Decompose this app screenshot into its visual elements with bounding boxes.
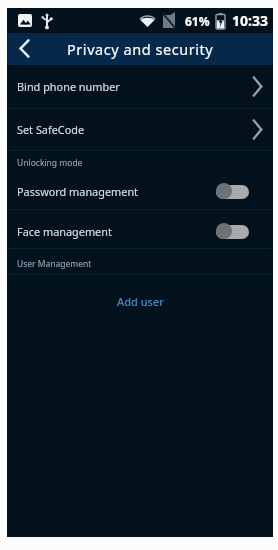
staticText: 61% [185,13,210,29]
staticText: User Management [17,258,92,270]
staticText: Unlocking mode [17,157,83,169]
staticText: Set SafeCode [17,122,85,137]
staticText: Password management [17,184,139,199]
staticText: Add user [117,294,164,309]
staticText: Bind phone number [17,79,120,94]
button[interactable]: Set SafeCode [7,109,273,150]
button[interactable]: Bind phone number [7,64,273,108]
staticText: Privacy and security [67,39,214,59]
staticText: Face management [17,224,112,239]
button[interactable]: Back [10,33,38,61]
button[interactable]: Add user [7,285,273,317]
button[interactable]: Face management [7,212,273,250]
button[interactable]: Password management [7,173,273,209]
staticText: 10:33 [232,11,268,30]
